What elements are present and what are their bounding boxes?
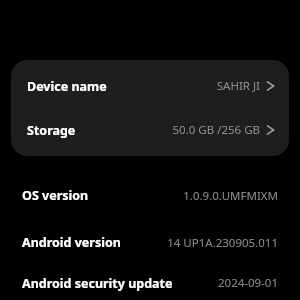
button[interactable]: Device name — [11, 64, 289, 108]
button[interactable]: Storage — [11, 108, 289, 152]
staticText: OS version — [22, 187, 89, 204]
staticText: Device name — [27, 78, 107, 95]
button[interactable]: Android security update — [0, 266, 300, 300]
button[interactable]: Android version — [0, 219, 300, 266]
staticText: Android security update — [22, 275, 173, 292]
button[interactable]: OS version — [0, 172, 300, 219]
staticText: 14 UP1A.230905.011 — [167, 235, 278, 251]
staticText: 1.0.9.0.UMFMIXM — [183, 188, 278, 204]
staticText: Storage — [27, 122, 76, 139]
staticText: Android version — [22, 234, 121, 251]
staticText: SAHIR JI — [216, 78, 260, 94]
staticText: 50.0 GB /256 GB — [172, 122, 260, 138]
staticText: 2024-09-01 — [217, 275, 278, 291]
